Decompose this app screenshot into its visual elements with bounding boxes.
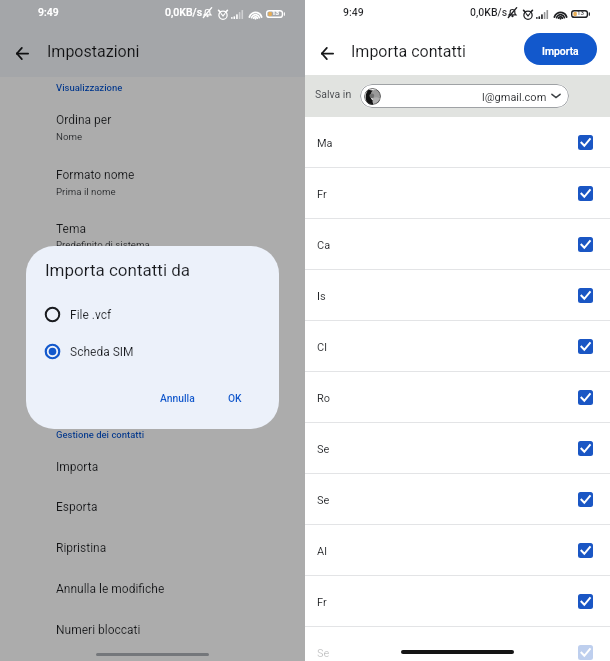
staticText: Al bbox=[317, 545, 327, 558]
button[interactable]: Scheda SIM bbox=[26, 333, 279, 370]
button[interactable] bbox=[0, 576, 305, 606]
staticText: Prima il nome bbox=[56, 186, 116, 197]
button[interactable]: Se bbox=[305, 423, 610, 474]
staticText: 0,0KB/s bbox=[165, 6, 203, 18]
staticText: Esporta bbox=[56, 500, 98, 514]
staticText: Fr bbox=[317, 596, 327, 609]
button[interactable]: OK bbox=[218, 386, 252, 410]
staticText: Formato nome bbox=[56, 168, 135, 182]
button[interactable]: Importa bbox=[524, 33, 597, 65]
button[interactable]: Ca bbox=[305, 219, 610, 270]
button[interactable] bbox=[0, 107, 305, 147]
staticText: Scheda SIM bbox=[70, 345, 134, 359]
staticText: Annulla le modifiche bbox=[56, 582, 165, 596]
staticText: Numeri bloccati bbox=[56, 623, 141, 637]
button[interactable] bbox=[0, 162, 305, 202]
staticText: Tema bbox=[56, 222, 86, 236]
staticText: Importa contatti bbox=[351, 42, 466, 61]
staticText: 0,0KB/s bbox=[470, 6, 508, 18]
button[interactable]: Back bbox=[10, 41, 34, 65]
staticText: Annulla bbox=[160, 392, 195, 404]
staticText: 9:49 bbox=[343, 6, 364, 18]
button[interactable]: Se bbox=[305, 627, 610, 661]
staticText: Se bbox=[317, 443, 330, 456]
button[interactable]: Back bbox=[315, 41, 339, 65]
button[interactable] bbox=[0, 454, 305, 484]
staticText: Importa bbox=[56, 460, 99, 474]
staticText: Se bbox=[317, 647, 330, 660]
staticText: Impostazioni bbox=[47, 42, 140, 61]
button[interactable]: Ro bbox=[305, 372, 610, 423]
staticText: Importa bbox=[542, 45, 579, 57]
button[interactable] bbox=[0, 216, 305, 256]
staticText: Cl bbox=[317, 341, 327, 354]
button[interactable]: Fr bbox=[305, 576, 610, 627]
button[interactable]: File .vcf bbox=[26, 296, 279, 333]
staticText: 13 bbox=[577, 9, 585, 16]
staticText: 9:49 bbox=[38, 6, 59, 18]
staticText: Se bbox=[317, 494, 330, 507]
staticText: Importa contatti da bbox=[45, 260, 191, 280]
staticText: Salva in bbox=[315, 88, 352, 100]
button[interactable]: Cl bbox=[305, 321, 610, 372]
button[interactable]: l@gmail.com bbox=[360, 84, 569, 108]
staticText: Ma bbox=[317, 137, 333, 150]
staticText: Ro bbox=[317, 392, 331, 405]
button[interactable]: Fr bbox=[305, 168, 610, 219]
button[interactable] bbox=[0, 495, 305, 525]
staticText: Ca bbox=[317, 239, 331, 252]
staticText: Is bbox=[317, 290, 326, 303]
button[interactable]: Ma bbox=[305, 117, 610, 168]
button[interactable] bbox=[0, 535, 305, 565]
button[interactable]: Is bbox=[305, 270, 610, 321]
staticText: 13 bbox=[272, 9, 280, 16]
button[interactable]: Annulla bbox=[150, 386, 205, 410]
button[interactable] bbox=[0, 617, 305, 647]
staticText: Ordina per bbox=[56, 113, 112, 127]
button[interactable]: Visualizzazione bbox=[0, 0, 67, 11]
button[interactable]: Se bbox=[305, 474, 610, 525]
staticText: Fr bbox=[317, 188, 327, 201]
staticText: OK bbox=[228, 392, 242, 404]
button[interactable]: Gestione dei contatti bbox=[0, 0, 89, 11]
staticText: Predefinito di sistema bbox=[56, 239, 150, 250]
staticText: File .vcf bbox=[70, 308, 112, 322]
button[interactable]: Al bbox=[305, 525, 610, 576]
staticText: l@gmail.com bbox=[482, 91, 547, 104]
staticText: Nome bbox=[56, 131, 83, 142]
staticText: Ripristina bbox=[56, 541, 107, 555]
